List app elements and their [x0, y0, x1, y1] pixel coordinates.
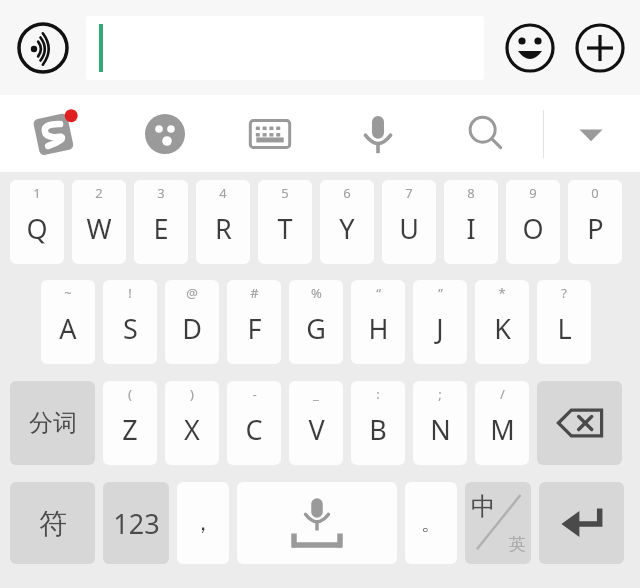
- staticText: 英: [509, 534, 526, 555]
- staticText: F: [247, 310, 262, 347]
- staticText: X: [184, 411, 200, 448]
- button[interactable]: K: [475, 280, 529, 364]
- staticText: %: [311, 284, 322, 302]
- button[interactable]: 中英切换: [465, 482, 531, 564]
- staticText: M: [490, 411, 515, 448]
- staticText: L: [557, 310, 572, 347]
- button[interactable]: Voice: [354, 110, 402, 158]
- staticText: 2: [95, 184, 103, 202]
- button[interactable]: M: [475, 381, 529, 465]
- staticText: “: [376, 284, 381, 302]
- button[interactable]: B: [351, 381, 405, 465]
- staticText: 0: [591, 184, 599, 202]
- button[interactable]: T: [258, 180, 312, 264]
- staticText: P: [587, 210, 604, 247]
- staticText: W: [86, 210, 112, 247]
- button[interactable]: G: [289, 280, 343, 364]
- staticText: T: [277, 210, 293, 247]
- staticText: 123: [113, 505, 160, 542]
- staticText: Z: [122, 411, 138, 448]
- staticText: _: [313, 385, 319, 403]
- staticText: :: [376, 385, 380, 403]
- staticText: 中: [471, 491, 496, 522]
- staticText: 分词: [29, 408, 77, 438]
- button[interactable]: A: [41, 280, 95, 364]
- button[interactable]: I: [444, 180, 498, 264]
- button[interactable]: E: [134, 180, 188, 264]
- staticText: (: [128, 385, 132, 403]
- staticText: 8: [467, 184, 475, 202]
- button[interactable]: Text input: [86, 16, 484, 80]
- button[interactable]: P: [568, 180, 622, 264]
- staticText: E: [153, 210, 169, 247]
- staticText: 3: [157, 184, 165, 202]
- button[interactable]: 逗号: [177, 482, 229, 564]
- staticText: K: [494, 310, 511, 347]
- button[interactable]: Keyboard: [246, 110, 294, 158]
- button[interactable]: N: [413, 381, 467, 465]
- staticText: ;: [438, 385, 442, 403]
- staticText: ，: [192, 509, 214, 537]
- staticText: 6: [343, 184, 351, 202]
- button[interactable]: Emoji: [505, 23, 555, 73]
- staticText: ”: [438, 284, 443, 302]
- staticText: N: [430, 411, 451, 448]
- button[interactable]: Hide keyboard: [568, 111, 614, 157]
- staticText: Q: [26, 210, 48, 247]
- staticText: 9: [529, 184, 537, 202]
- button[interactable]: C: [227, 381, 281, 465]
- staticText: ): [190, 385, 194, 403]
- staticText: 1: [33, 184, 41, 202]
- button[interactable]: Space: [237, 482, 397, 564]
- staticText: 7: [405, 184, 413, 202]
- staticText: @: [186, 284, 198, 302]
- button[interactable]: Voice input: [17, 22, 69, 74]
- button[interactable]: S: [103, 280, 157, 364]
- staticText: U: [399, 210, 419, 247]
- button[interactable]: 123: [103, 482, 169, 564]
- button[interactable]: R: [196, 180, 250, 264]
- staticText: /: [500, 385, 505, 403]
- staticText: B: [369, 411, 387, 448]
- button[interactable]: V: [289, 381, 343, 465]
- staticText: V: [308, 411, 325, 448]
- staticText: 5: [281, 184, 289, 202]
- staticText: #: [250, 284, 259, 302]
- staticText: H: [368, 310, 389, 347]
- button[interactable]: 分词: [10, 381, 95, 465]
- staticText: *: [498, 284, 506, 302]
- staticText: A: [59, 310, 77, 347]
- button[interactable]: Enter: [539, 482, 624, 564]
- staticText: R: [215, 210, 232, 247]
- button[interactable]: 符号: [10, 482, 95, 564]
- button[interactable]: U: [382, 180, 436, 264]
- staticText: !: [128, 284, 132, 302]
- staticText: 4: [219, 184, 227, 202]
- button[interactable]: Sogou: [28, 107, 82, 161]
- button[interactable]: O: [506, 180, 560, 264]
- staticText: Y: [339, 210, 355, 247]
- button[interactable]: Y: [320, 180, 374, 264]
- button[interactable]: Search: [462, 110, 510, 158]
- button[interactable]: F: [227, 280, 281, 364]
- button[interactable]: Stickers: [141, 110, 189, 158]
- staticText: D: [182, 310, 202, 347]
- button[interactable]: Q: [10, 180, 64, 264]
- staticText: C: [245, 411, 263, 448]
- button[interactable]: Z: [103, 381, 157, 465]
- button[interactable]: W: [72, 180, 126, 264]
- staticText: O: [522, 210, 544, 247]
- button[interactable]: 句号: [405, 482, 457, 564]
- button[interactable]: Backspace: [537, 381, 622, 465]
- button[interactable]: Add: [575, 23, 625, 73]
- staticText: G: [306, 310, 326, 347]
- button[interactable]: X: [165, 381, 219, 465]
- button[interactable]: L: [537, 280, 591, 364]
- staticText: -: [252, 385, 257, 403]
- staticText: S: [123, 310, 138, 347]
- button[interactable]: H: [351, 280, 405, 364]
- staticText: 。: [421, 511, 441, 536]
- button[interactable]: D: [165, 280, 219, 364]
- button[interactable]: J: [413, 280, 467, 364]
- staticText: ?: [561, 284, 567, 302]
